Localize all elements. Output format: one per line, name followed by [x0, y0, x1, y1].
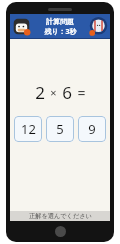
- button[interactable]: Player avatar: [12, 17, 31, 36]
- staticText: 残り：3秒: [44, 27, 77, 37]
- staticText: 5: [56, 120, 64, 138]
- staticText: 12: [21, 120, 36, 138]
- button[interactable]: 12: [14, 116, 42, 142]
- button[interactable]: 5: [46, 116, 74, 142]
- staticText: 6: [62, 81, 72, 104]
- button[interactable]: Home: [55, 226, 66, 237]
- staticText: 正解を選んでください: [29, 212, 92, 220]
- staticText: =: [77, 83, 86, 102]
- staticText: ×: [50, 85, 57, 100]
- button[interactable]: Opponent avatar: [89, 17, 108, 36]
- staticText: 2: [35, 81, 45, 104]
- button[interactable]: 9: [78, 116, 106, 142]
- staticText: 計算問題: [46, 17, 74, 26]
- staticText: 9: [88, 120, 96, 138]
